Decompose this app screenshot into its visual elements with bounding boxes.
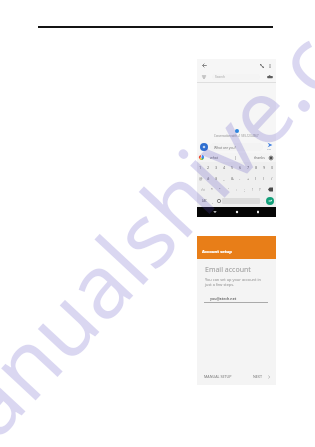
button[interactable]: 6 [236, 162, 244, 173]
button[interactable]: More options [267, 63, 273, 69]
staticText: thanks [254, 155, 265, 160]
button[interactable]: @ [197, 173, 204, 184]
button[interactable]: Add attachment [200, 143, 208, 151]
staticText: 9 [263, 165, 266, 170]
button[interactable]: ) [260, 173, 268, 184]
button[interactable]: _ [220, 173, 228, 184]
button[interactable]: Backspace [264, 184, 276, 195]
button[interactable]: 3 [212, 162, 220, 173]
button[interactable]: $ [212, 173, 220, 184]
staticText: $ [215, 176, 218, 181]
button[interactable]: ' [224, 184, 232, 195]
staticText: Search [215, 75, 225, 79]
staticText: ABC [202, 199, 207, 203]
button[interactable]: : [232, 184, 240, 195]
button[interactable]: " [216, 184, 224, 195]
button[interactable]: Filter [201, 74, 207, 80]
button[interactable]: Home [234, 209, 240, 215]
staticText: ? [259, 187, 261, 192]
staticText: What are you? [214, 145, 237, 149]
staticText: Email account [205, 265, 251, 275]
staticText: 5 [231, 165, 234, 170]
staticText: & [231, 176, 234, 181]
button[interactable]: MANUAL SETUP [202, 372, 234, 381]
staticText: , [212, 199, 213, 204]
staticText: _ [223, 176, 225, 181]
staticText: " [219, 187, 221, 192]
button[interactable]: 5 [228, 162, 236, 173]
staticText: Conversation with +1 555-123-4567 [214, 134, 259, 138]
button[interactable]: Next [266, 374, 272, 380]
button[interactable]: Recent apps [255, 209, 261, 215]
button[interactable]: # [204, 173, 212, 184]
button[interactable]: 7 [244, 162, 252, 173]
staticText: what [210, 155, 218, 160]
button[interactable]: Emoji [215, 195, 222, 207]
button[interactable]: Send SMS [265, 142, 274, 151]
staticText: . [263, 199, 264, 204]
button[interactable]: Google search [199, 155, 204, 160]
staticText: ' [228, 187, 229, 192]
staticText: You can set up your account in just a fe… [205, 277, 261, 287]
button[interactable]: Back [201, 62, 208, 69]
button[interactable]: 0 [268, 162, 276, 173]
staticText: - [239, 176, 241, 181]
button[interactable]: ( [252, 173, 260, 184]
button[interactable]: 8 [252, 162, 260, 173]
staticText: @ [199, 176, 203, 181]
button[interactable]: / [268, 173, 276, 184]
button[interactable]: + [244, 173, 252, 184]
staticText: 6 [239, 165, 242, 170]
button[interactable]: 4 [220, 162, 228, 173]
button[interactable]: ? [256, 184, 264, 195]
staticText: 0 [271, 165, 274, 170]
staticText: 1 [199, 165, 202, 170]
staticText: # [207, 176, 210, 181]
staticText: ( [255, 176, 257, 181]
button[interactable]: 9 [260, 162, 268, 173]
staticText: : [236, 187, 237, 192]
staticText: / [271, 176, 273, 181]
staticText: ; [244, 187, 245, 192]
staticText: NEXT [253, 374, 263, 379]
button[interactable]: 1 [197, 162, 204, 173]
button[interactable]: ! [248, 184, 256, 195]
staticText: * [211, 187, 213, 192]
staticText: you@atech.net [210, 296, 237, 301]
button[interactable]: Call [259, 63, 265, 69]
staticText: 4 [223, 165, 226, 170]
button[interactable]: * [208, 184, 216, 195]
button[interactable]: =\< [197, 184, 208, 195]
staticText: 2 [207, 165, 210, 170]
staticText: 3 [215, 165, 218, 170]
staticText: MANUAL SETUP [204, 374, 232, 379]
button[interactable]: Keyboard settings [269, 156, 273, 160]
staticText: 7 [247, 165, 250, 170]
button[interactable]: Back [212, 209, 218, 215]
staticText: Account setup [202, 249, 232, 255]
button[interactable]: Search [212, 74, 260, 80]
staticText: SMS [267, 148, 272, 151]
button[interactable]: NEXT [251, 372, 265, 381]
button[interactable]: ; [240, 184, 248, 195]
button[interactable]: , [209, 195, 215, 207]
button[interactable]: - [236, 173, 244, 184]
staticText: 8 [255, 165, 258, 170]
button[interactable]: 2 [204, 162, 212, 173]
staticText: =\< [201, 188, 205, 192]
button[interactable]: & [228, 173, 236, 184]
button[interactable]: Enter [266, 197, 274, 205]
staticText: ! [252, 187, 253, 192]
button[interactable]: ABC [199, 195, 209, 207]
button[interactable]: Camera [267, 74, 273, 80]
staticText: ) [263, 176, 265, 181]
staticText: + [247, 176, 250, 181]
button[interactable]: What are you? [210, 143, 263, 151]
